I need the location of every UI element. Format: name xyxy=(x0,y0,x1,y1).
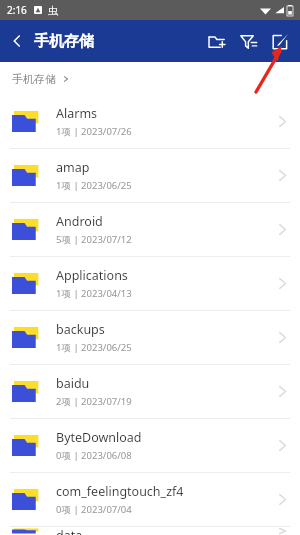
staticText: 5项 | 2023/07/12 xyxy=(56,233,132,246)
staticText: Alarms xyxy=(56,105,98,122)
button[interactable]: ByteDownload xyxy=(0,419,300,473)
staticText: 手机存储 xyxy=(12,72,56,86)
button[interactable]: Android xyxy=(0,203,300,257)
staticText: 0项 | 2023/06/08 xyxy=(56,449,132,462)
staticText: 1项 | 2023/07/26 xyxy=(56,125,132,138)
staticText: data xyxy=(56,527,83,535)
staticText: amap xyxy=(56,159,90,176)
staticText: baidu xyxy=(56,375,90,392)
staticText: 0项 | 2023/07/04 xyxy=(56,503,132,516)
staticText: 虫 xyxy=(48,4,58,17)
button[interactable]: New folder xyxy=(200,20,232,62)
staticText: 2:16 xyxy=(7,3,27,17)
staticText: 1项 | 2023/06/25 xyxy=(56,179,132,192)
staticText: Applications xyxy=(56,267,128,284)
button[interactable]: com_feelingtouch_zf4 xyxy=(0,473,300,527)
button[interactable]: amap xyxy=(0,149,300,203)
button[interactable]: Back xyxy=(0,20,34,62)
staticText: Android xyxy=(56,213,103,230)
button[interactable]: baidu xyxy=(0,365,300,419)
staticText: backups xyxy=(56,321,105,338)
button[interactable]: 手机存储 xyxy=(12,72,56,86)
staticText: 1项 | 2023/04/13 xyxy=(56,287,132,300)
staticText: 1项 | 2023/06/25 xyxy=(56,341,132,354)
button[interactable]: Alarms xyxy=(0,95,300,149)
staticText: com_feelingtouch_zf4 xyxy=(56,483,184,500)
button[interactable]: Applications xyxy=(0,257,300,311)
staticText: ByteDownload xyxy=(56,429,142,446)
button[interactable]: Filter xyxy=(232,20,264,62)
button[interactable]: data xyxy=(0,527,300,535)
staticText: 2项 | 2023/07/19 xyxy=(56,395,132,408)
button[interactable]: Edit xyxy=(264,20,296,62)
button[interactable]: backups xyxy=(0,311,300,365)
staticText: 手机存储 xyxy=(34,32,94,51)
